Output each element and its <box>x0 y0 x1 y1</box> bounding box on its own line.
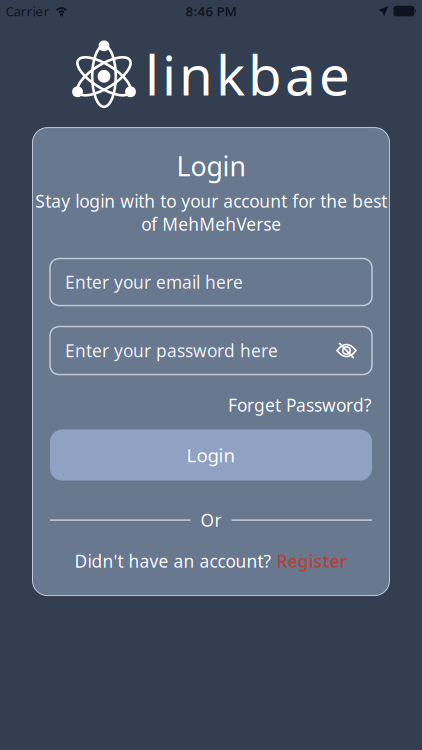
button[interactable]: Enter your email here <box>50 258 372 305</box>
button[interactable]: Enter your password here <box>50 326 372 374</box>
button[interactable]: Forget Password? <box>228 393 372 416</box>
staticText: Login <box>176 148 245 183</box>
staticText: Didn't have an account? <box>74 550 271 573</box>
staticText: 8:46 PM <box>185 2 236 20</box>
staticText: Or <box>200 509 221 532</box>
staticText: Carrier <box>5 2 49 20</box>
staticText: Login <box>186 443 235 467</box>
staticText: linkbae <box>145 38 350 111</box>
staticText: Enter your email here <box>65 270 243 293</box>
staticText: Stay login with to your account for the … <box>35 189 387 235</box>
staticText: Enter your password here <box>65 339 278 362</box>
button[interactable]: Login <box>50 430 372 481</box>
staticText: Forget Password? <box>228 393 372 416</box>
button[interactable]: Register <box>276 550 347 573</box>
button[interactable]: Show password <box>336 342 372 359</box>
staticText: Register <box>276 550 347 573</box>
